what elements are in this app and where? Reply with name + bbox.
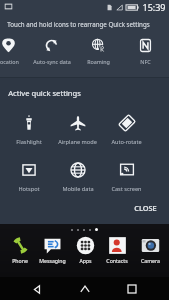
button[interactable]: Location <box>0 38 25 65</box>
staticText: Hotspot <box>18 185 40 193</box>
button[interactable]: Phone <box>5 236 35 264</box>
staticText: Active quick settings <box>8 88 81 98</box>
staticText: Phone <box>12 257 28 264</box>
button[interactable]: Roaming <box>75 38 122 65</box>
staticText: Auto-sync data <box>33 58 71 65</box>
staticText: Cast screen <box>111 185 142 193</box>
staticText: Auto-rotate <box>111 138 142 146</box>
button[interactable]: CLOSE <box>130 201 161 215</box>
button[interactable]: Home <box>74 278 96 300</box>
staticText: Location <box>0 58 19 65</box>
button[interactable]: Contacts <box>102 236 132 264</box>
staticText: Airplane mode <box>58 138 97 146</box>
button[interactable]: Auto-sync data <box>28 38 75 65</box>
staticText: Mobile data <box>62 185 94 193</box>
button[interactable]: Flashlight <box>4 115 53 146</box>
staticText: Messaging <box>39 257 66 264</box>
button[interactable]: Cast screen <box>102 162 151 193</box>
button[interactable]: Hotspot <box>4 162 53 193</box>
staticText: NFC <box>140 58 151 65</box>
staticText: 15:39 <box>142 1 166 13</box>
button[interactable]: NFC <box>122 38 169 65</box>
staticText: Roaming <box>87 58 110 65</box>
staticText: Flashlight <box>16 138 42 146</box>
staticText: Apps <box>79 257 92 264</box>
staticText: Camera <box>141 257 160 264</box>
button[interactable]: Messaging <box>37 236 67 264</box>
button[interactable]: Camera <box>135 236 165 264</box>
staticText: Touch and hold icons to rearrange Quick … <box>7 20 150 28</box>
button[interactable]: Back <box>26 278 48 300</box>
button[interactable]: Airplane mode <box>53 115 102 146</box>
button[interactable]: Auto-rotate <box>102 115 151 146</box>
button[interactable]: Mobile data <box>53 162 102 193</box>
staticText: CLOSE <box>134 203 157 213</box>
staticText: Contacts <box>106 257 128 264</box>
button[interactable]: Apps <box>70 236 100 264</box>
button[interactable]: Recents <box>121 278 143 300</box>
